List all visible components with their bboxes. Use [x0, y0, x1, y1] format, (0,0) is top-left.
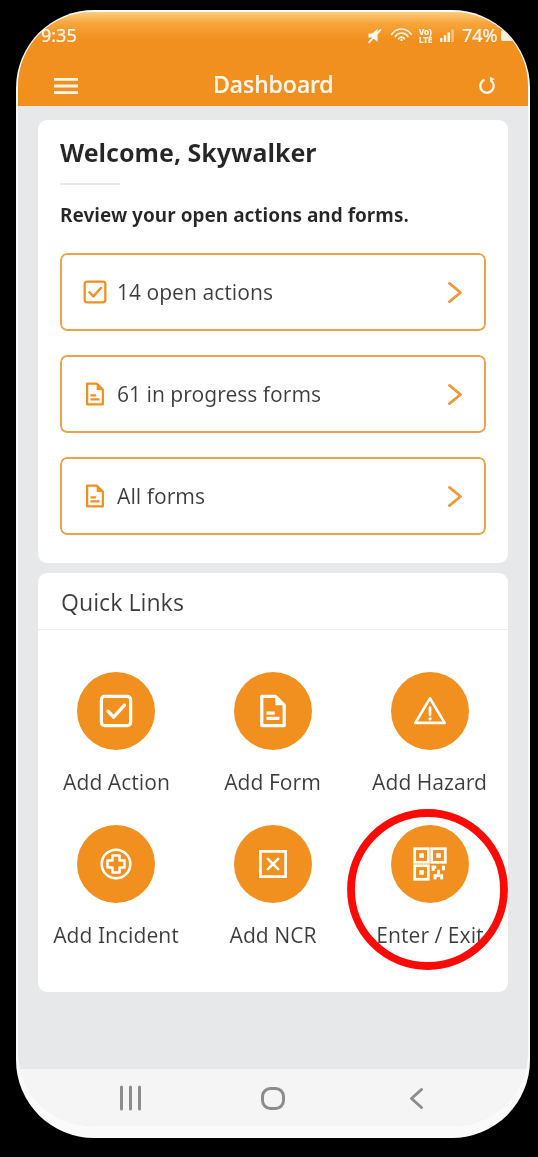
staticText: All forms	[117, 482, 206, 511]
button[interactable]: Enter / Exit	[351, 825, 508, 950]
button[interactable]: Refresh	[469, 68, 505, 104]
staticText: Enter / Exit	[376, 921, 484, 950]
button[interactable]: Add Form	[194, 672, 351, 797]
button[interactable]: 14 open actions	[60, 253, 486, 331]
staticText: Add Action	[63, 768, 170, 797]
staticText: Welcome, Skywalker	[60, 135, 317, 169]
staticText: Vo) LTE	[419, 26, 433, 45]
staticText: 14 open actions	[117, 278, 273, 307]
staticText: Add Incident	[53, 921, 179, 950]
button[interactable]: Add Action	[38, 672, 194, 797]
button[interactable]: Back	[390, 1072, 442, 1124]
staticText: 61 in progress forms	[117, 380, 322, 409]
button[interactable]: Recents	[104, 1072, 156, 1124]
button[interactable]: Home	[247, 1072, 299, 1124]
button[interactable]: Open navigation menu	[44, 64, 88, 108]
button[interactable]: Add Hazard	[351, 672, 508, 797]
button[interactable]: All forms	[60, 457, 486, 535]
button[interactable]: 61 in progress forms	[60, 355, 486, 433]
staticText: Add Form	[224, 768, 321, 797]
staticText: 74%	[462, 23, 498, 48]
staticText: Review your open actions and forms.	[60, 202, 409, 228]
button[interactable]: Add NCR	[194, 825, 351, 950]
staticText: Add Hazard	[372, 768, 487, 797]
staticText: Dashboard	[213, 68, 334, 99]
staticText: Quick Links	[61, 586, 184, 617]
staticText: Add NCR	[229, 921, 317, 950]
staticText: 9:35	[41, 23, 77, 48]
button[interactable]: Add Incident	[38, 825, 194, 950]
